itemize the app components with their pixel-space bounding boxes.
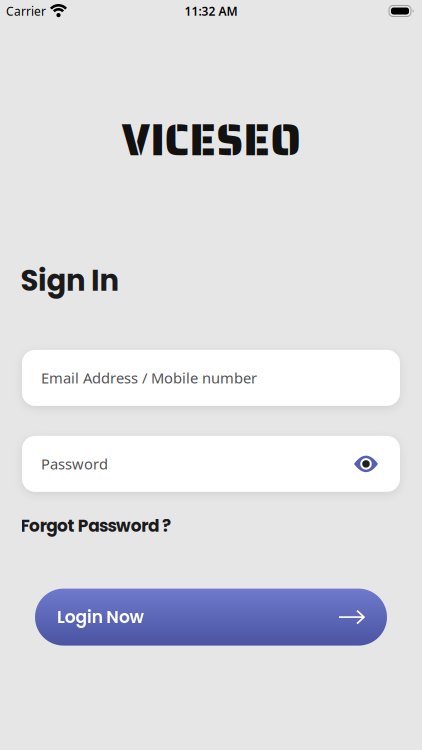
staticText: VICESEO — [121, 106, 300, 174]
staticText: Login Now — [57, 605, 144, 629]
staticText: 11:32 AM — [184, 3, 237, 19]
staticText: Forgot Password ? — [20, 514, 171, 538]
staticText: Sign In — [20, 260, 119, 301]
staticText: Email Address / Mobile number — [41, 368, 257, 388]
button[interactable]: Login Now — [35, 589, 387, 646]
staticText: Password — [41, 454, 108, 474]
staticText: Carrier — [6, 3, 46, 19]
button[interactable]: Email Address / Mobile number — [22, 350, 400, 406]
button[interactable]: Forgot Password ? — [20, 514, 171, 538]
button[interactable]: Password — [22, 436, 400, 492]
